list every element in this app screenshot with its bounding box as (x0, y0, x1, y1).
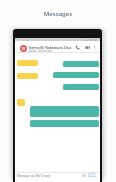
button[interactable]: Message us! We'll reply (17, 174, 57, 178)
staticText: Emma W. Nakamura-Cruz (29, 45, 72, 50)
staticText: Messages (0, 10, 116, 18)
button[interactable]: Send (88, 173, 96, 177)
staticText: Active 10 min ago (29, 49, 53, 53)
button[interactable]: Message (63, 61, 99, 67)
button[interactable]: Contact avatar (20, 45, 27, 52)
button[interactable]: Message (17, 99, 25, 106)
button[interactable]: More options (92, 45, 97, 50)
button[interactable]: Video call (85, 45, 90, 50)
button[interactable]: Message (53, 72, 99, 78)
button[interactable]: Message (63, 84, 99, 90)
staticText: U (22, 46, 25, 51)
button[interactable]: Message (30, 120, 99, 127)
button[interactable]: Message (17, 60, 38, 66)
button[interactable]: Call (75, 45, 80, 50)
staticText: Message us! We'll reply (17, 174, 51, 178)
staticText: Send (89, 173, 96, 177)
button[interactable]: Message (17, 73, 38, 79)
button[interactable]: Message (30, 106, 99, 117)
button[interactable]: Add attachment (82, 174, 86, 177)
